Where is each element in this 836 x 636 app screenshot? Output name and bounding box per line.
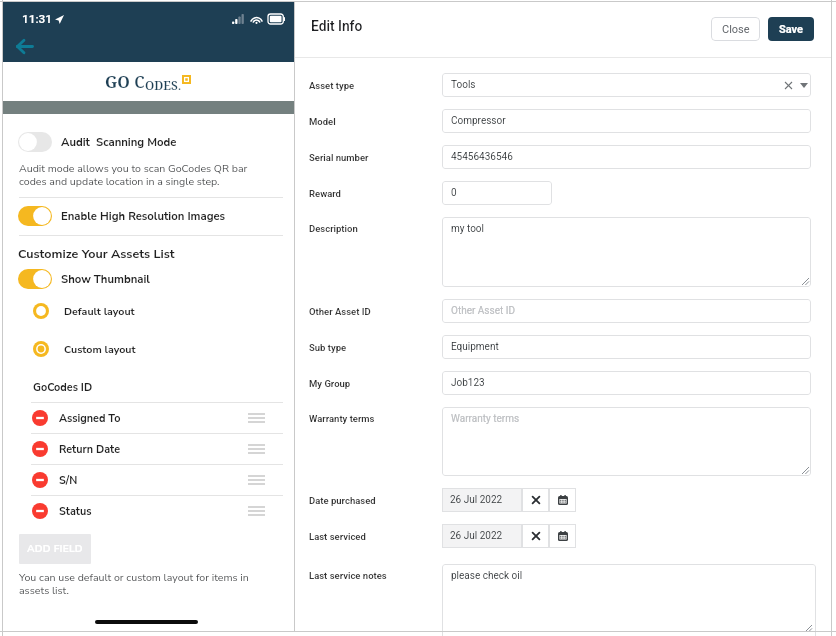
- staticText: Date purchased: [309, 495, 376, 506]
- button[interactable]: Status: [31, 496, 283, 526]
- staticText: Asset type: [309, 80, 355, 91]
- button[interactable]: Save: [768, 17, 814, 41]
- staticText: Other Asset ID: [451, 305, 516, 317]
- staticText: ADD FIELD: [27, 542, 83, 556]
- button[interactable]: Show Thumbnail: [18, 269, 150, 289]
- staticText: Equipment: [451, 341, 499, 353]
- button[interactable]: 45456436546: [442, 145, 811, 169]
- button[interactable]: ADD FIELD: [19, 534, 91, 564]
- staticText: ODES: [145, 77, 178, 93]
- button[interactable]: my tool: [442, 217, 811, 287]
- staticText: Show Thumbnail: [61, 272, 150, 287]
- button[interactable]: 26 Jul 2022: [442, 488, 522, 512]
- staticText: Job123: [451, 377, 485, 389]
- button[interactable]: Compressor: [442, 109, 811, 133]
- staticText: 11:31: [22, 12, 52, 26]
- button[interactable]: Other Asset ID: [442, 299, 811, 323]
- button[interactable]: Custom layout: [33, 341, 136, 357]
- button[interactable]: Clear date: [522, 488, 549, 512]
- button[interactable]: Warranty terms: [442, 407, 811, 476]
- button[interactable]: Open calendar: [549, 488, 576, 512]
- button[interactable]: Back: [11, 33, 38, 60]
- staticText: my tool: [451, 223, 484, 235]
- staticText: Warranty terms: [309, 413, 375, 424]
- button[interactable]: Tools: [442, 73, 811, 97]
- staticText: Model: [309, 116, 336, 127]
- staticText: Customize Your Assets List: [18, 245, 175, 262]
- button[interactable]: please check oil: [442, 564, 816, 636]
- staticText: Other Asset ID: [309, 306, 371, 317]
- staticText: Tools: [451, 79, 476, 91]
- staticText: Status: [59, 504, 92, 519]
- button[interactable]: 26 Jul 2022: [442, 524, 522, 548]
- button[interactable]: Assigned To: [31, 403, 283, 433]
- staticText: Return Date: [59, 442, 121, 457]
- staticText: You can use default or custom layout for…: [19, 570, 249, 598]
- button[interactable]: Equipment: [442, 335, 811, 359]
- staticText: Serial number: [309, 152, 369, 163]
- staticText: Save: [779, 23, 804, 36]
- staticText: Edit Info: [311, 18, 363, 34]
- staticText: Enable High Resolution Images: [61, 209, 226, 224]
- staticText: C: [130, 71, 145, 93]
- button[interactable]: S/N: [31, 465, 283, 495]
- staticText: 45456436546: [451, 151, 513, 163]
- staticText: Description: [309, 223, 358, 234]
- button[interactable]: Clear date: [522, 524, 549, 548]
- button[interactable]: Close: [711, 17, 760, 41]
- staticText: Assigned To: [59, 411, 121, 426]
- button[interactable]: Enable High Resolution Images: [18, 206, 226, 226]
- button[interactable]: Open calendar: [549, 524, 576, 548]
- staticText: Reward: [309, 188, 341, 199]
- staticText: Last service notes: [309, 570, 387, 581]
- staticText: S/N: [59, 473, 78, 488]
- staticText: please check oil: [451, 570, 523, 582]
- staticText: Custom layout: [64, 342, 136, 356]
- button[interactable]: 0: [442, 181, 552, 205]
- button[interactable]: Return Date: [31, 434, 283, 464]
- staticText: Warranty terms: [451, 413, 520, 425]
- staticText: Close: [722, 23, 750, 36]
- staticText: 0: [451, 187, 457, 199]
- button[interactable]: Audit Scanning Mode: [18, 132, 177, 152]
- button[interactable]: Default layout: [33, 303, 135, 319]
- staticText: Audit mode allows you to scan GoCodes QR…: [19, 161, 248, 189]
- staticText: 26 Jul 2022: [450, 530, 503, 542]
- staticText: 26 Jul 2022: [450, 494, 503, 506]
- staticText: Audit Scanning Mode: [61, 135, 177, 150]
- staticText: GO: [105, 71, 130, 93]
- staticText: .: [178, 78, 182, 93]
- staticText: GoCodes ID: [33, 380, 93, 395]
- staticText: Compressor: [451, 115, 506, 127]
- button[interactable]: Job123: [442, 371, 811, 395]
- staticText: Last serviced: [309, 531, 366, 542]
- staticText: Default layout: [64, 304, 135, 318]
- staticText: My Group: [309, 378, 351, 389]
- staticText: Sub type: [309, 342, 347, 353]
